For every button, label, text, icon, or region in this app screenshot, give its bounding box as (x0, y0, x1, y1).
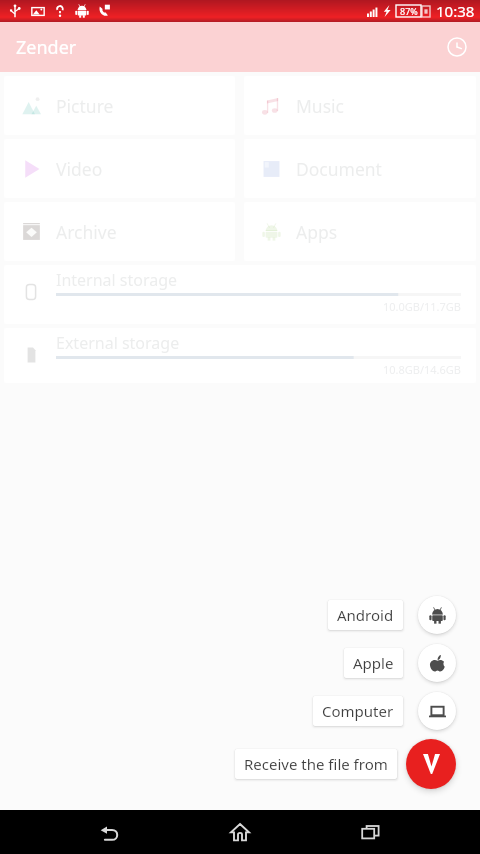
staticText: Archive (56, 220, 117, 244)
button[interactable]: Home (218, 810, 262, 854)
staticText: Android (337, 605, 394, 625)
button[interactable]: Video (4, 139, 235, 198)
staticText: Picture (56, 94, 114, 118)
button[interactable]: Android (418, 596, 456, 634)
button[interactable]: Music (244, 76, 476, 135)
button[interactable]: Send (406, 739, 456, 789)
button[interactable]: Computer (418, 692, 456, 730)
staticText: Receive the file from (244, 754, 388, 774)
button[interactable]: Archive (4, 202, 235, 261)
button[interactable]: Receive the file from (235, 749, 397, 779)
button[interactable]: Apple (344, 648, 403, 678)
staticText: 87% (400, 5, 418, 17)
button[interactable]: Recents (349, 810, 393, 854)
staticText: Apps (296, 220, 338, 244)
staticText: Internal storage (56, 269, 178, 291)
staticText: External storage (56, 332, 180, 354)
button[interactable]: Computer (313, 696, 403, 726)
staticText: Computer (322, 701, 394, 721)
button[interactable]: Internal storage (4, 265, 476, 324)
button[interactable]: Android (328, 600, 403, 630)
button[interactable]: Picture (4, 76, 235, 135)
button[interactable]: Back (87, 810, 131, 854)
button[interactable]: History (441, 31, 473, 63)
staticText: Video (56, 157, 103, 181)
button[interactable]: External storage (4, 328, 476, 383)
button[interactable]: Apple (418, 644, 456, 682)
staticText: 10:38 (436, 1, 475, 21)
staticText: Music (296, 94, 344, 118)
button[interactable]: Apps (244, 202, 476, 261)
button[interactable]: Document (244, 139, 476, 198)
staticText: Document (296, 157, 382, 181)
staticText: Apple (353, 653, 394, 673)
staticText: Zender (16, 35, 77, 60)
